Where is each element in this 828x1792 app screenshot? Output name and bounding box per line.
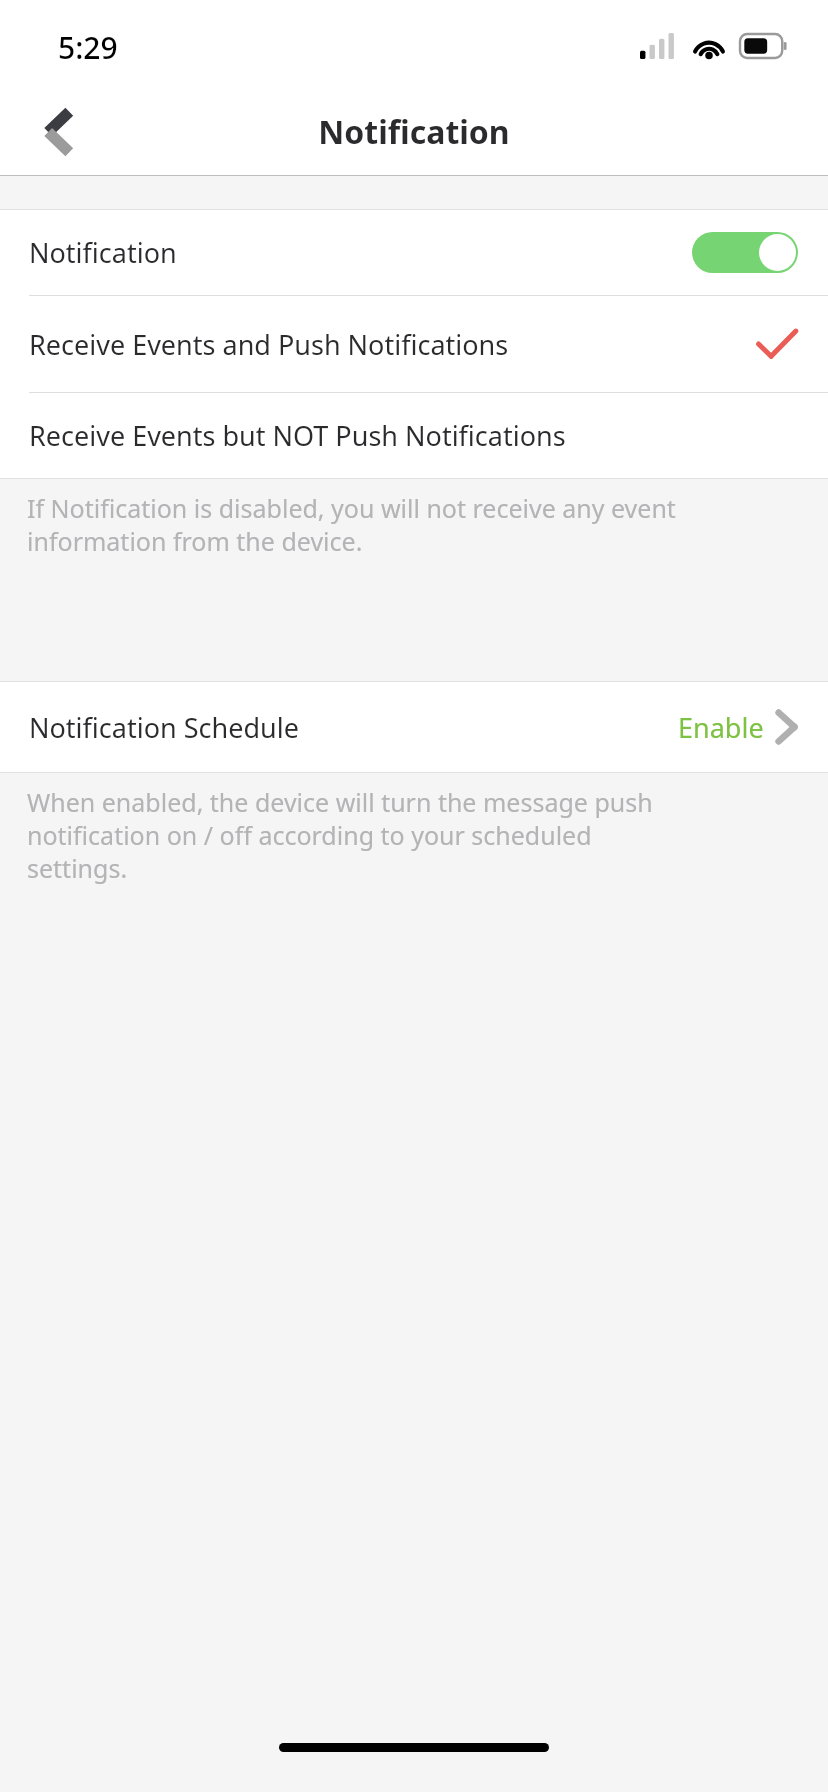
button[interactable]: Notification toggle xyxy=(692,232,798,273)
staticText: Enable xyxy=(678,709,764,746)
staticText: Notification Schedule xyxy=(29,709,299,746)
button[interactable]: Receive Events and Push Notifications xyxy=(0,296,828,392)
staticText: If Notification is disabled, you will no… xyxy=(27,491,788,558)
staticText: Notification xyxy=(318,110,510,154)
staticText: Receive Events and Push Notifications xyxy=(29,326,509,363)
staticText: 5:29 xyxy=(58,27,118,68)
button[interactable]: Receive Events but NOT Push Notification… xyxy=(0,393,828,478)
button[interactable]: Notification xyxy=(0,210,828,295)
button[interactable]: Back xyxy=(22,99,88,165)
staticText: When enabled, the device will turn the m… xyxy=(27,785,698,885)
staticText: Receive Events but NOT Push Notification… xyxy=(29,417,566,454)
staticText: Notification xyxy=(29,234,177,271)
button[interactable]: Notification Schedule xyxy=(0,682,828,772)
